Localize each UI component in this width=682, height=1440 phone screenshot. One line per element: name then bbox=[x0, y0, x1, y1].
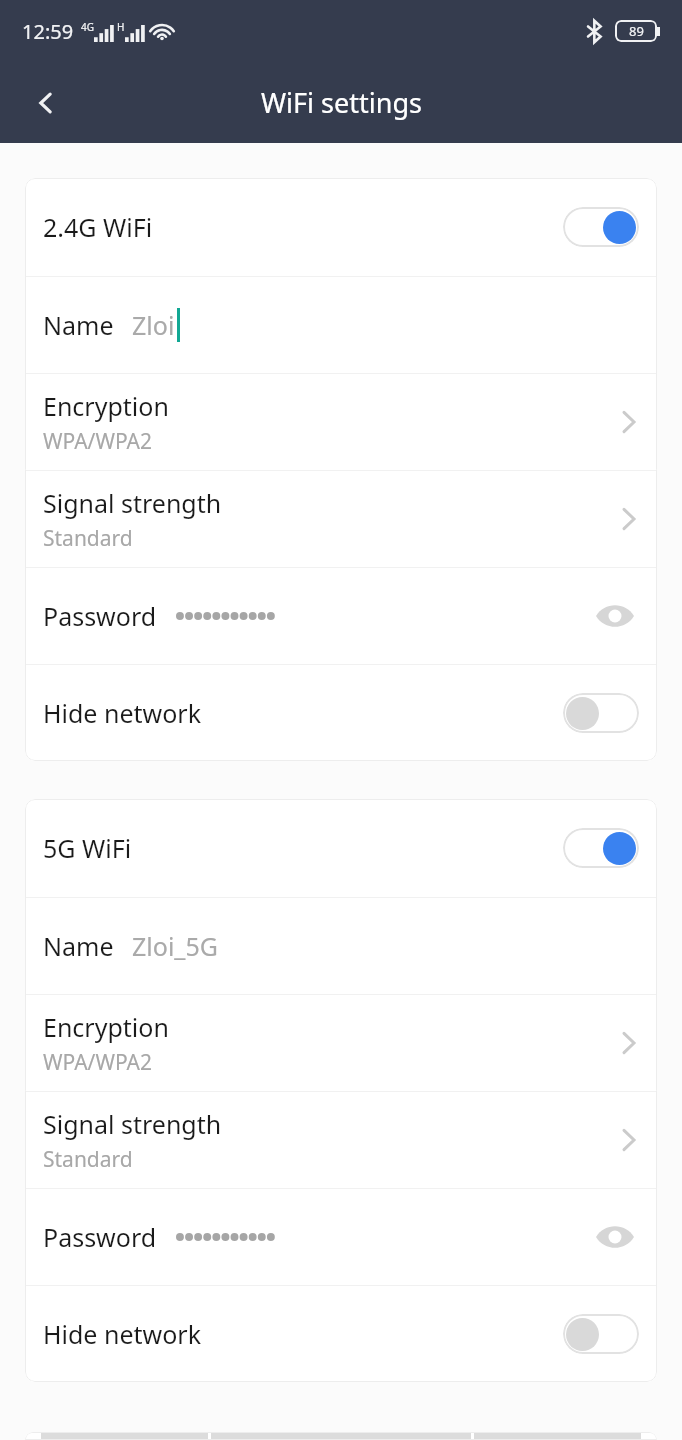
button[interactable]: Encryption bbox=[25, 995, 657, 1091]
staticText: Signal strength bbox=[43, 486, 222, 520]
staticText: OK bbox=[323, 1432, 359, 1440]
button[interactable]: 5G WiFi bbox=[25, 799, 657, 897]
other: Bluetooth bbox=[586, 20, 603, 43]
staticText: Signal strength bbox=[43, 1107, 222, 1141]
button[interactable]: OK bbox=[25, 1432, 657, 1440]
button[interactable]: Name bbox=[25, 898, 657, 994]
staticText: H bbox=[117, 20, 125, 34]
button[interactable]: Show password bbox=[591, 592, 639, 640]
staticText: Standard bbox=[43, 1145, 133, 1174]
button[interactable]: Off bbox=[563, 693, 639, 733]
button[interactable]: Password bbox=[25, 568, 657, 664]
staticText: Encryption bbox=[43, 389, 169, 423]
staticText: WPA/WPA2 bbox=[43, 427, 153, 456]
button[interactable]: Signal strength bbox=[25, 1092, 657, 1188]
staticText: Password bbox=[43, 1220, 157, 1254]
staticText: Hide network bbox=[43, 1317, 201, 1351]
staticText: Standard bbox=[43, 524, 133, 553]
staticText: 12:59 bbox=[22, 18, 74, 45]
button[interactable]: Name bbox=[25, 277, 657, 373]
button[interactable]: On bbox=[563, 828, 639, 868]
staticText: Encryption bbox=[43, 1010, 169, 1044]
button[interactable]: 2.4G WiFi bbox=[25, 178, 657, 276]
button[interactable]: On bbox=[563, 207, 639, 247]
staticText: WPA/WPA2 bbox=[43, 1048, 153, 1077]
staticText: Zloi bbox=[132, 308, 175, 342]
staticText: Zloi_5G bbox=[132, 929, 218, 963]
button[interactable]: Encryption bbox=[25, 374, 657, 470]
staticText: WiFi settings bbox=[261, 84, 422, 121]
button[interactable]: Signal strength bbox=[25, 471, 657, 567]
button[interactable]: Back bbox=[18, 75, 74, 131]
button[interactable]: Hide network bbox=[25, 1286, 657, 1382]
button[interactable]: Password bbox=[25, 1189, 657, 1285]
button[interactable]: Show password bbox=[591, 1213, 639, 1261]
staticText: Name bbox=[43, 308, 114, 342]
staticText: Password bbox=[43, 599, 157, 633]
button[interactable]: Off bbox=[563, 1314, 639, 1354]
button[interactable]: Hide network bbox=[25, 665, 657, 761]
staticText: 4G bbox=[81, 20, 94, 34]
staticText: 5G WiFi bbox=[43, 831, 132, 865]
staticText: 89 bbox=[629, 22, 644, 40]
staticText: Name bbox=[43, 929, 114, 963]
staticText: 2.4G WiFi bbox=[43, 210, 153, 244]
staticText: Hide network bbox=[43, 696, 201, 730]
